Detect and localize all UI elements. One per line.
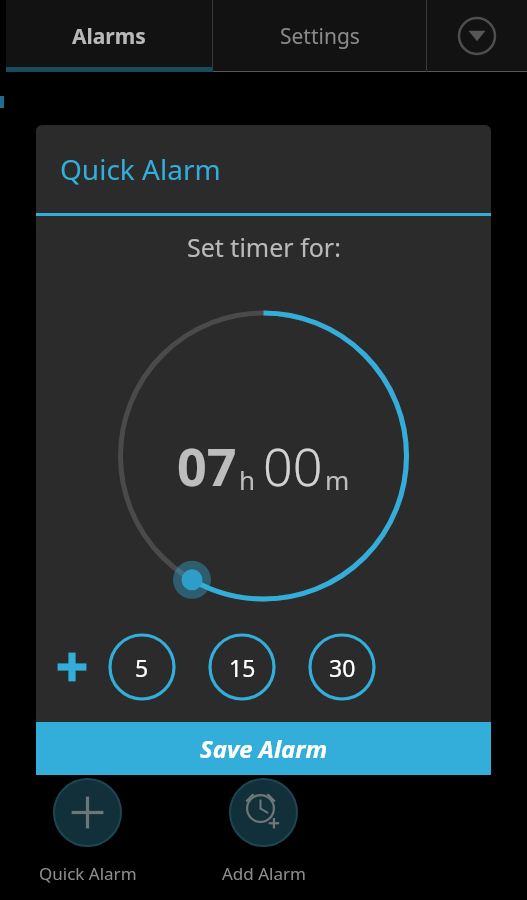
- staticText: Quick Alarm: [60, 150, 221, 188]
- button[interactable]: Settings: [213, 0, 426, 72]
- button[interactable]: Save Alarm: [36, 722, 491, 775]
- staticText: 15: [229, 652, 256, 683]
- staticText: Alarms: [72, 22, 146, 51]
- button[interactable]: Add preset: [36, 620, 108, 714]
- staticText: 30: [329, 652, 356, 683]
- button[interactable]: Alarms: [6, 0, 212, 72]
- staticText: Add Alarm: [222, 862, 306, 885]
- staticText: 00: [263, 430, 323, 501]
- button[interactable]: Add Alarm: [229, 778, 298, 847]
- button[interactable]: Quick Alarm: [36, 125, 491, 213]
- button[interactable]: More options: [427, 0, 527, 72]
- staticText: h: [239, 462, 256, 497]
- button[interactable]: 5: [108, 633, 176, 701]
- staticText: Set timer for:: [187, 230, 341, 264]
- staticText: Quick Alarm: [39, 862, 137, 885]
- staticText: 5: [135, 652, 149, 683]
- staticText: m: [325, 462, 350, 497]
- staticText: Settings: [280, 22, 360, 51]
- button[interactable]: 15: [208, 633, 276, 701]
- staticText: Save Alarm: [200, 732, 328, 765]
- button[interactable]: 30: [308, 633, 376, 701]
- staticText: 07: [177, 430, 237, 501]
- button[interactable]: Quick Alarm: [53, 778, 122, 847]
